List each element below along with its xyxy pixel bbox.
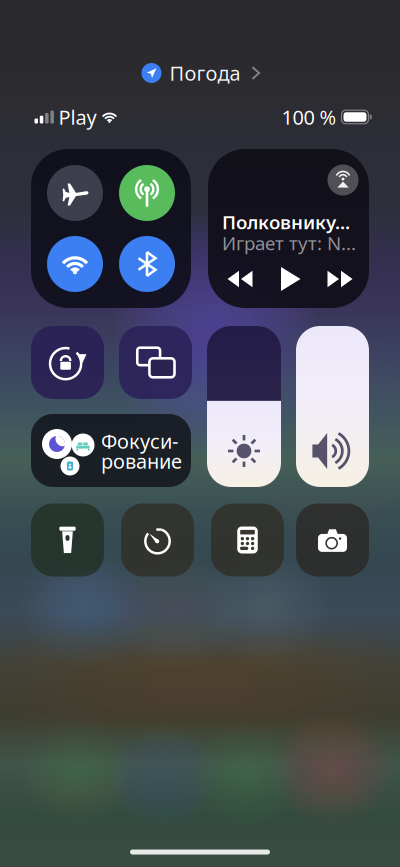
staticText: рование xyxy=(101,448,182,474)
staticText: Фокуси- xyxy=(101,428,178,454)
staticText: Полковнику... xyxy=(222,210,350,234)
button[interactable]: Flashlight xyxy=(31,503,104,576)
staticText: Играет тут: N... xyxy=(222,231,356,255)
button[interactable]: Camera xyxy=(296,503,369,576)
button[interactable]: AirPlay xyxy=(327,164,358,195)
button[interactable]: Wi-Fi xyxy=(47,236,103,292)
button[interactable]: Bluetooth xyxy=(119,236,175,292)
staticText: Play xyxy=(58,104,96,130)
button[interactable]: Timer xyxy=(121,503,194,576)
button[interactable]: Screen Mirroring xyxy=(119,326,192,399)
button[interactable]: Airplane Mode xyxy=(47,165,103,221)
button[interactable]: Volume xyxy=(296,326,369,487)
button[interactable]: Previous xyxy=(227,266,252,291)
staticText: Погода xyxy=(169,60,240,86)
button[interactable]: Next xyxy=(327,266,352,291)
button[interactable]: Cellular Data xyxy=(119,165,175,221)
staticText: 100 % xyxy=(281,104,336,130)
button[interactable]: Фокуси- xyxy=(31,414,191,487)
button[interactable]: Calculator xyxy=(211,503,284,576)
button[interactable]: Brightness xyxy=(207,326,281,487)
button[interactable]: Play xyxy=(277,266,302,291)
button[interactable]: Погода xyxy=(135,55,268,91)
button[interactable]: Rotation Lock xyxy=(31,326,104,399)
